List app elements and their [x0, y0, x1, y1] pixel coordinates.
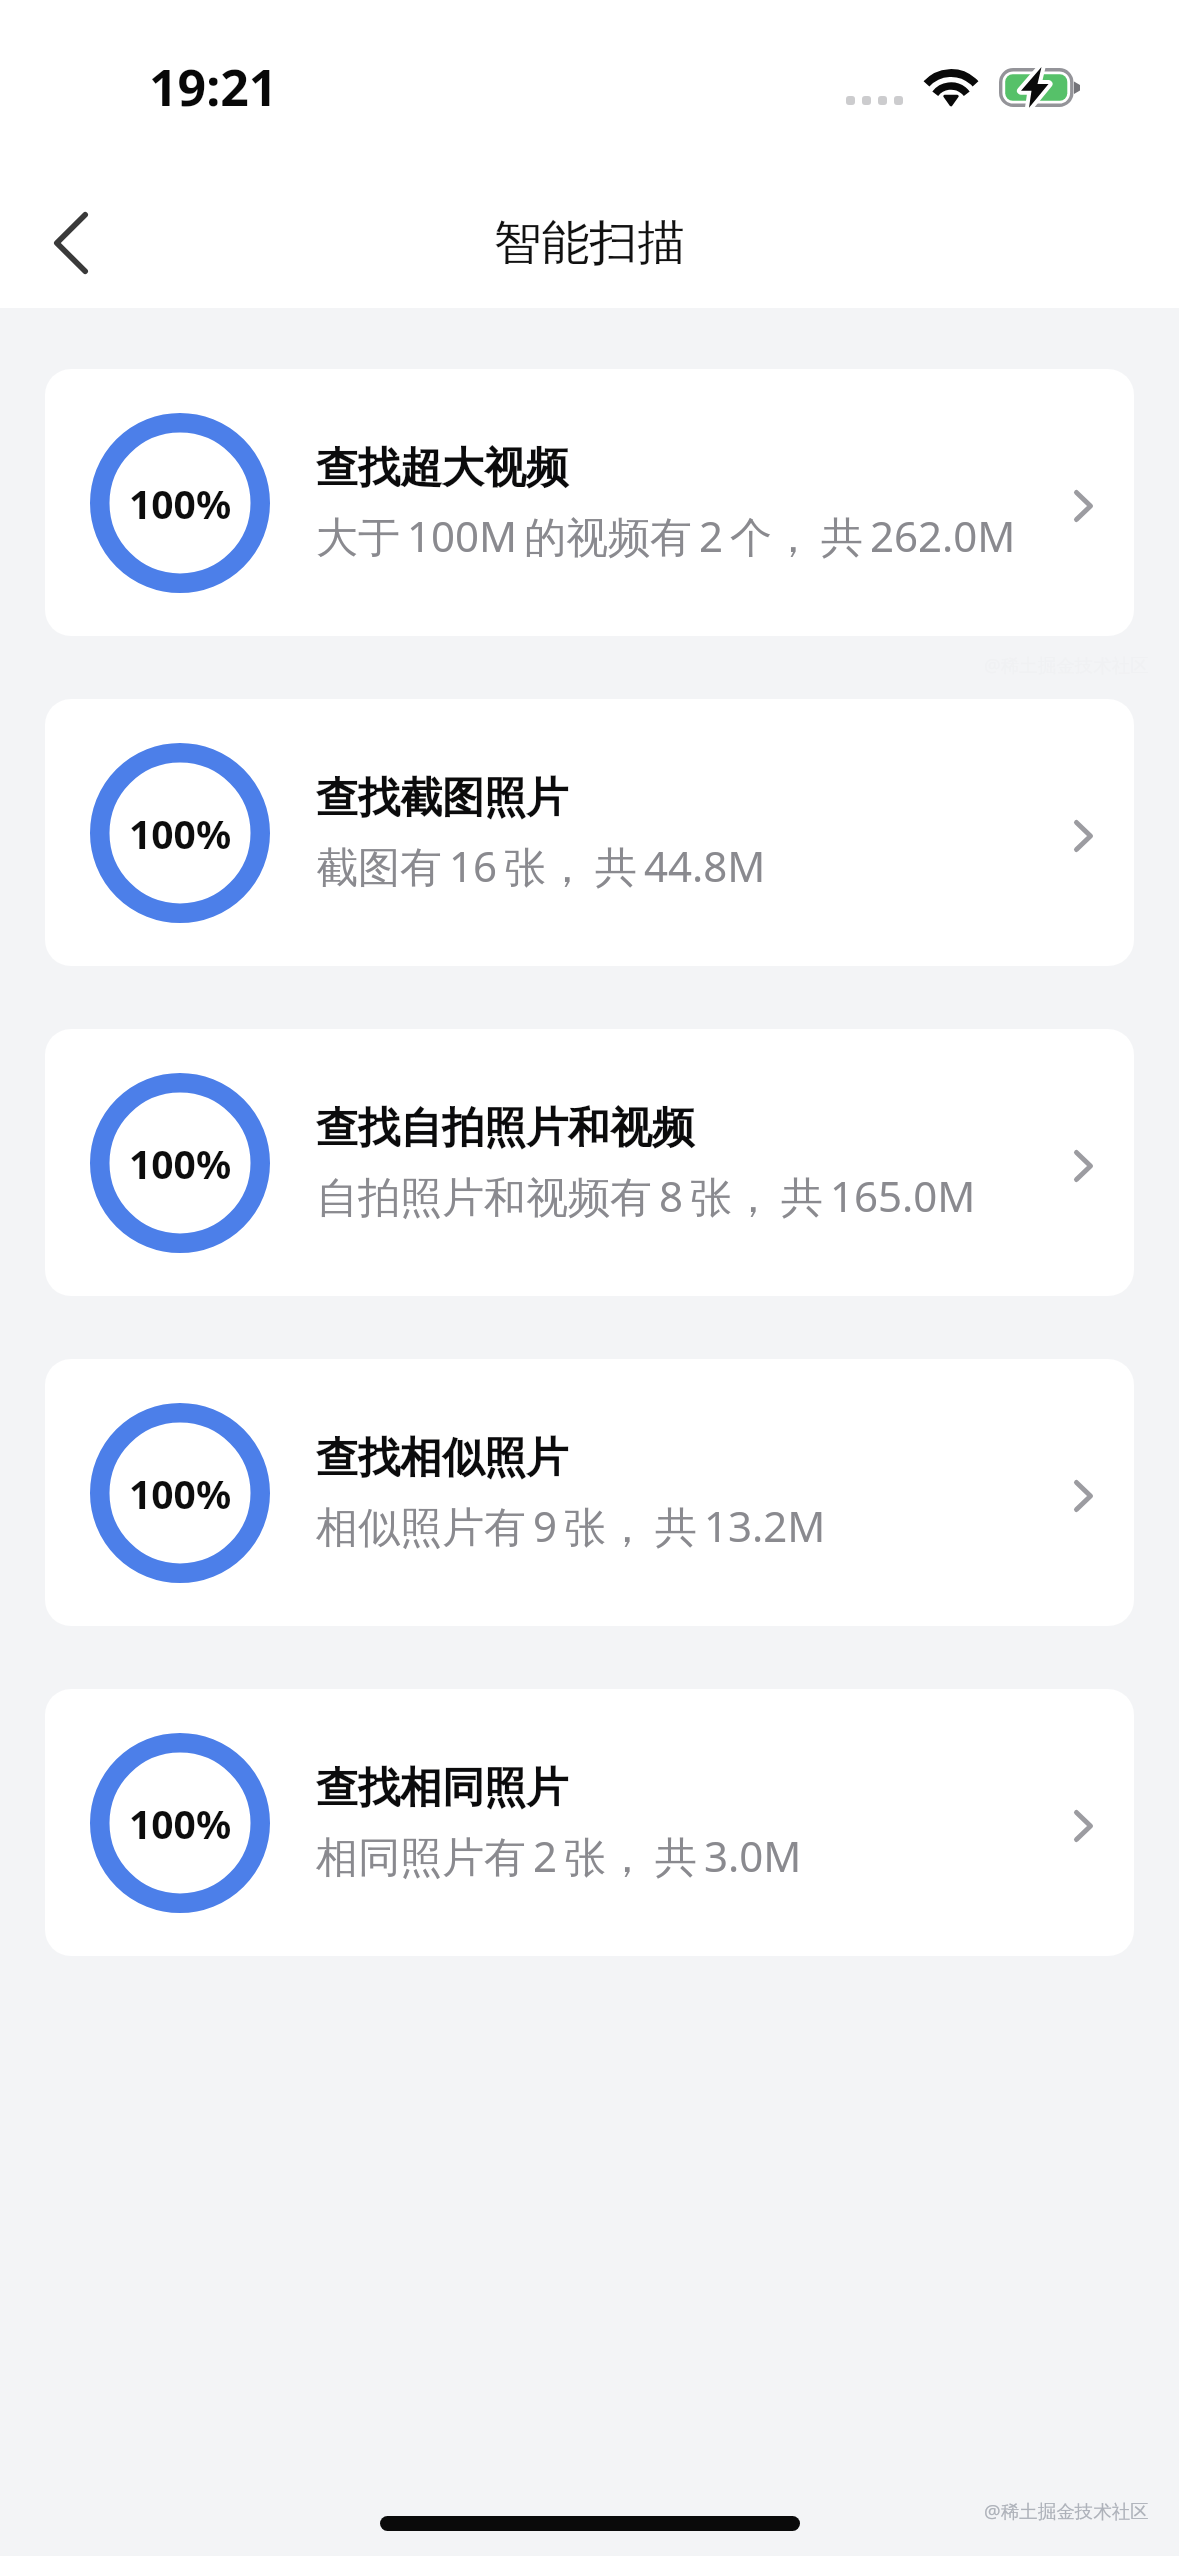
button[interactable]: 100% — [45, 699, 1134, 966]
staticText: 100% — [129, 807, 232, 860]
staticText: 截图有 16 张， 共 44.8M — [316, 837, 766, 894]
button[interactable]: 100% — [45, 369, 1134, 636]
staticText: 100% — [129, 477, 232, 530]
staticText: 查找超大视频 — [316, 442, 568, 495]
other: Battery charging — [999, 68, 1080, 109]
staticText: 智能扫描 — [0, 213, 1179, 273]
button[interactable]: 100% — [45, 1029, 1134, 1296]
staticText: 100% — [129, 1137, 232, 1190]
other: Wi-Fi connected — [926, 68, 976, 107]
staticText: 查找自拍照片和视频 — [316, 1102, 694, 1155]
button[interactable]: 100% — [45, 1359, 1134, 1626]
button[interactable]: 100% — [45, 1689, 1134, 1956]
staticText: 19:21 — [149, 53, 278, 121]
staticText: 大于 100M 的视频有 2 个， 共 262.0M — [316, 507, 1016, 564]
staticText: 相同照片有 2 张， 共 3.0M — [316, 1827, 802, 1884]
staticText: 100% — [129, 1467, 232, 1520]
staticText: 查找截图照片 — [316, 772, 568, 825]
staticText: 查找相似照片 — [316, 1432, 568, 1485]
staticText: 100% — [129, 1797, 232, 1850]
staticText: @稀土掘金技术社区 — [984, 2498, 1149, 2523]
staticText: 相似照片有 9 张， 共 13.2M — [316, 1497, 826, 1554]
other: Cellular signal — [846, 96, 903, 105]
staticText: 查找相同照片 — [316, 1762, 568, 1815]
button[interactable]: Back — [27, 199, 114, 286]
staticText: 自拍照片和视频有 8 张， 共 165.0M — [316, 1167, 976, 1224]
